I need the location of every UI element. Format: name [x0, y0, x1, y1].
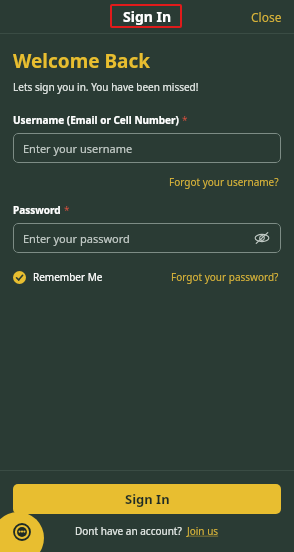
staticText: Remember Me — [33, 270, 103, 284]
button[interactable]: Support chat — [0, 512, 44, 552]
button[interactable]: Enter your password — [13, 223, 281, 253]
staticText: Sign In — [125, 490, 170, 508]
staticText: Forgot your password? — [171, 270, 279, 284]
staticText: Lets sign you in. You have been missed! — [13, 80, 199, 94]
button[interactable]: Enter your username — [13, 133, 281, 163]
staticText: Forgot your username? — [169, 175, 279, 189]
staticText: * — [182, 113, 188, 127]
staticText: Password — [13, 203, 61, 217]
staticText: Join us — [187, 524, 219, 538]
button[interactable]: Join us — [187, 524, 219, 538]
staticText: Sign In — [123, 7, 172, 26]
button[interactable]: Toggle password visibility — [253, 229, 271, 247]
button[interactable]: Sign In — [13, 484, 281, 514]
button[interactable]: Remember Me — [13, 267, 103, 287]
staticText: Close — [251, 9, 282, 25]
staticText: Dont have an account? — [75, 524, 182, 538]
staticText: Username (Email or Cell Number) — [13, 113, 179, 127]
staticText: Enter your password — [23, 231, 130, 246]
button[interactable]: Sign In — [115, 3, 180, 30]
staticText: Welcome Back — [13, 48, 151, 74]
staticText: Enter your username — [23, 141, 133, 156]
button[interactable]: Forgot your password? — [169, 268, 281, 286]
button[interactable]: Close — [239, 3, 294, 31]
staticText: * — [64, 203, 70, 217]
button[interactable]: Forgot your username? — [167, 173, 281, 191]
